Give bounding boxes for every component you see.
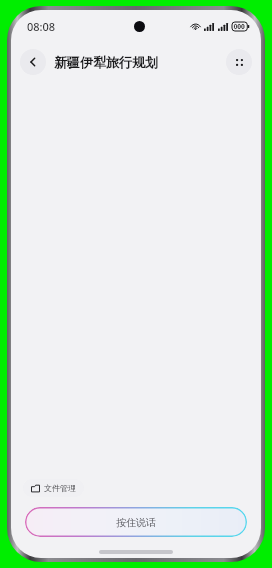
- button[interactable]: Back: [20, 49, 46, 75]
- staticText: 按住说话: [116, 516, 156, 529]
- button[interactable]: 文件管理: [23, 479, 84, 497]
- staticText: 08:08: [27, 19, 56, 34]
- staticText: 文件管理: [44, 483, 76, 493]
- button[interactable]: 按住说话: [25, 507, 247, 537]
- button[interactable]: More options: [226, 49, 252, 75]
- staticText: 新疆伊犁旅行规划: [54, 54, 158, 70]
